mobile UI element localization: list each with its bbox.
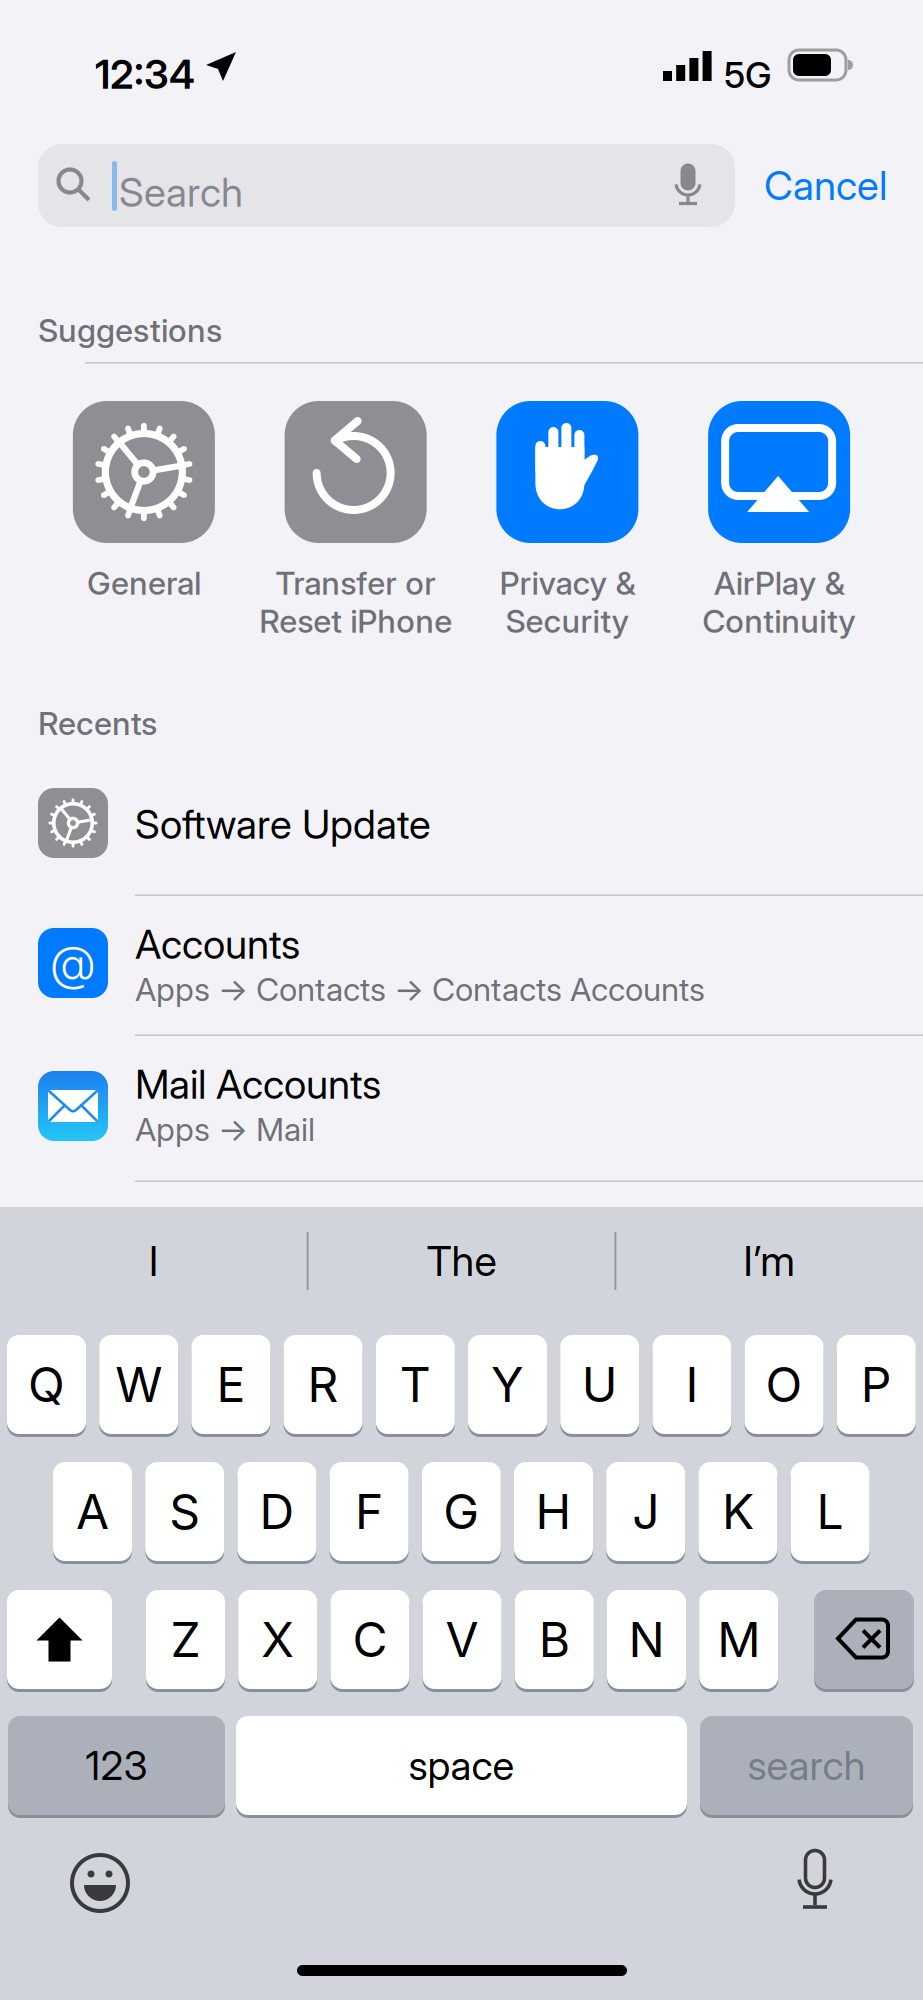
button[interactable]: R [284, 1335, 363, 1437]
staticText: C [352, 1610, 387, 1669]
staticText: W [115, 1355, 162, 1414]
button[interactable]: Privacy & [461, 401, 673, 641]
staticText: 5G [724, 53, 772, 97]
staticText: Transfer or [275, 564, 436, 602]
staticText: E [216, 1355, 245, 1414]
button[interactable]: D [237, 1462, 316, 1564]
button[interactable]: General [38, 401, 250, 641]
staticText: R [308, 1355, 339, 1414]
staticText: Security [505, 602, 629, 640]
button[interactable]: search [700, 1716, 913, 1818]
staticText: B [539, 1610, 570, 1669]
staticText: AirPlay & [714, 564, 845, 602]
button[interactable]: Software Update [0, 750, 923, 896]
button[interactable]: 123 [8, 1716, 225, 1818]
button[interactable]: U [560, 1335, 639, 1437]
button[interactable]: H [514, 1462, 593, 1564]
staticText: Mail Accounts [135, 1060, 381, 1108]
staticText: Q [28, 1355, 65, 1414]
staticText: F [355, 1482, 383, 1541]
staticText: 123 [85, 1741, 147, 1790]
staticText: search [747, 1741, 865, 1790]
staticText: V [446, 1610, 479, 1669]
button[interactable]: X [238, 1590, 317, 1692]
staticText: space [408, 1741, 514, 1790]
staticText: T [400, 1355, 431, 1414]
button[interactable]: Mail Accounts [0, 1036, 923, 1182]
staticText: 12:34 [95, 50, 195, 98]
button[interactable]: N [607, 1590, 686, 1692]
staticText: U [582, 1355, 618, 1414]
staticText: Cancel [764, 161, 887, 210]
button[interactable]: Emoji keyboard [69, 1852, 131, 1914]
button[interactable]: A [53, 1462, 132, 1564]
staticText: D [259, 1482, 294, 1541]
staticText: M [717, 1610, 760, 1669]
button[interactable]: Z [146, 1590, 225, 1692]
button[interactable]: The [308, 1207, 615, 1315]
staticText: @ [49, 934, 96, 992]
staticText: Recents [38, 704, 157, 743]
staticText: J [632, 1482, 659, 1541]
staticText: I [685, 1355, 698, 1414]
staticText: H [535, 1482, 571, 1541]
staticText: General [87, 564, 201, 602]
staticText: A [76, 1482, 109, 1541]
button[interactable]: V [423, 1590, 502, 1692]
button[interactable]: C [330, 1590, 409, 1692]
staticText: N [628, 1610, 664, 1669]
button[interactable]: F [330, 1462, 409, 1564]
button[interactable]: Y [468, 1335, 547, 1437]
button[interactable]: K [698, 1462, 777, 1564]
button[interactable]: Cancel [764, 144, 923, 227]
staticText: The [426, 1236, 496, 1286]
staticText: G [443, 1482, 479, 1541]
staticText: X [261, 1610, 294, 1669]
button[interactable]: Transfer or [250, 401, 462, 641]
staticText: I [149, 1236, 159, 1286]
staticText: I’m [743, 1236, 795, 1286]
staticText: Continuity [702, 602, 856, 640]
button[interactable]: Shift [7, 1590, 112, 1692]
button[interactable]: P [837, 1335, 916, 1437]
staticText: L [817, 1482, 844, 1541]
button[interactable]: space [236, 1716, 687, 1818]
button[interactable]: L [791, 1462, 870, 1564]
button[interactable]: @ [0, 896, 923, 1036]
staticText: Y [491, 1355, 524, 1414]
button[interactable]: I’m [615, 1207, 923, 1315]
button[interactable]: Dictation [795, 1850, 835, 1912]
button[interactable]: S [145, 1462, 224, 1564]
button[interactable]: M [699, 1590, 778, 1692]
staticText: Z [170, 1610, 200, 1669]
staticText: Accounts [135, 920, 300, 968]
button[interactable]: Q [7, 1335, 86, 1437]
staticText: Privacy & [499, 564, 635, 602]
button[interactable]: O [745, 1335, 824, 1437]
button[interactable]: T [376, 1335, 455, 1437]
button[interactable]: G [422, 1462, 501, 1564]
button[interactable]: I [0, 1207, 308, 1315]
staticText: Suggestions [38, 311, 222, 350]
button[interactable]: I [652, 1335, 731, 1437]
button[interactable]: J [606, 1462, 685, 1564]
button[interactable]: W [99, 1335, 178, 1437]
staticText: Software Update [135, 800, 431, 848]
staticText: Apps → Contacts → Contacts Accounts [135, 970, 705, 1009]
button[interactable]: E [191, 1335, 270, 1437]
staticText: Search [119, 168, 243, 216]
staticText: P [861, 1355, 892, 1414]
button[interactable]: B [515, 1590, 594, 1692]
staticText: S [169, 1482, 200, 1541]
button[interactable]: Delete [814, 1590, 914, 1692]
button[interactable]: AirPlay & [673, 401, 885, 641]
staticText: K [722, 1482, 754, 1541]
staticText: Reset iPhone [259, 602, 452, 640]
staticText: O [766, 1355, 803, 1414]
staticText: Apps → Mail [135, 1110, 315, 1149]
